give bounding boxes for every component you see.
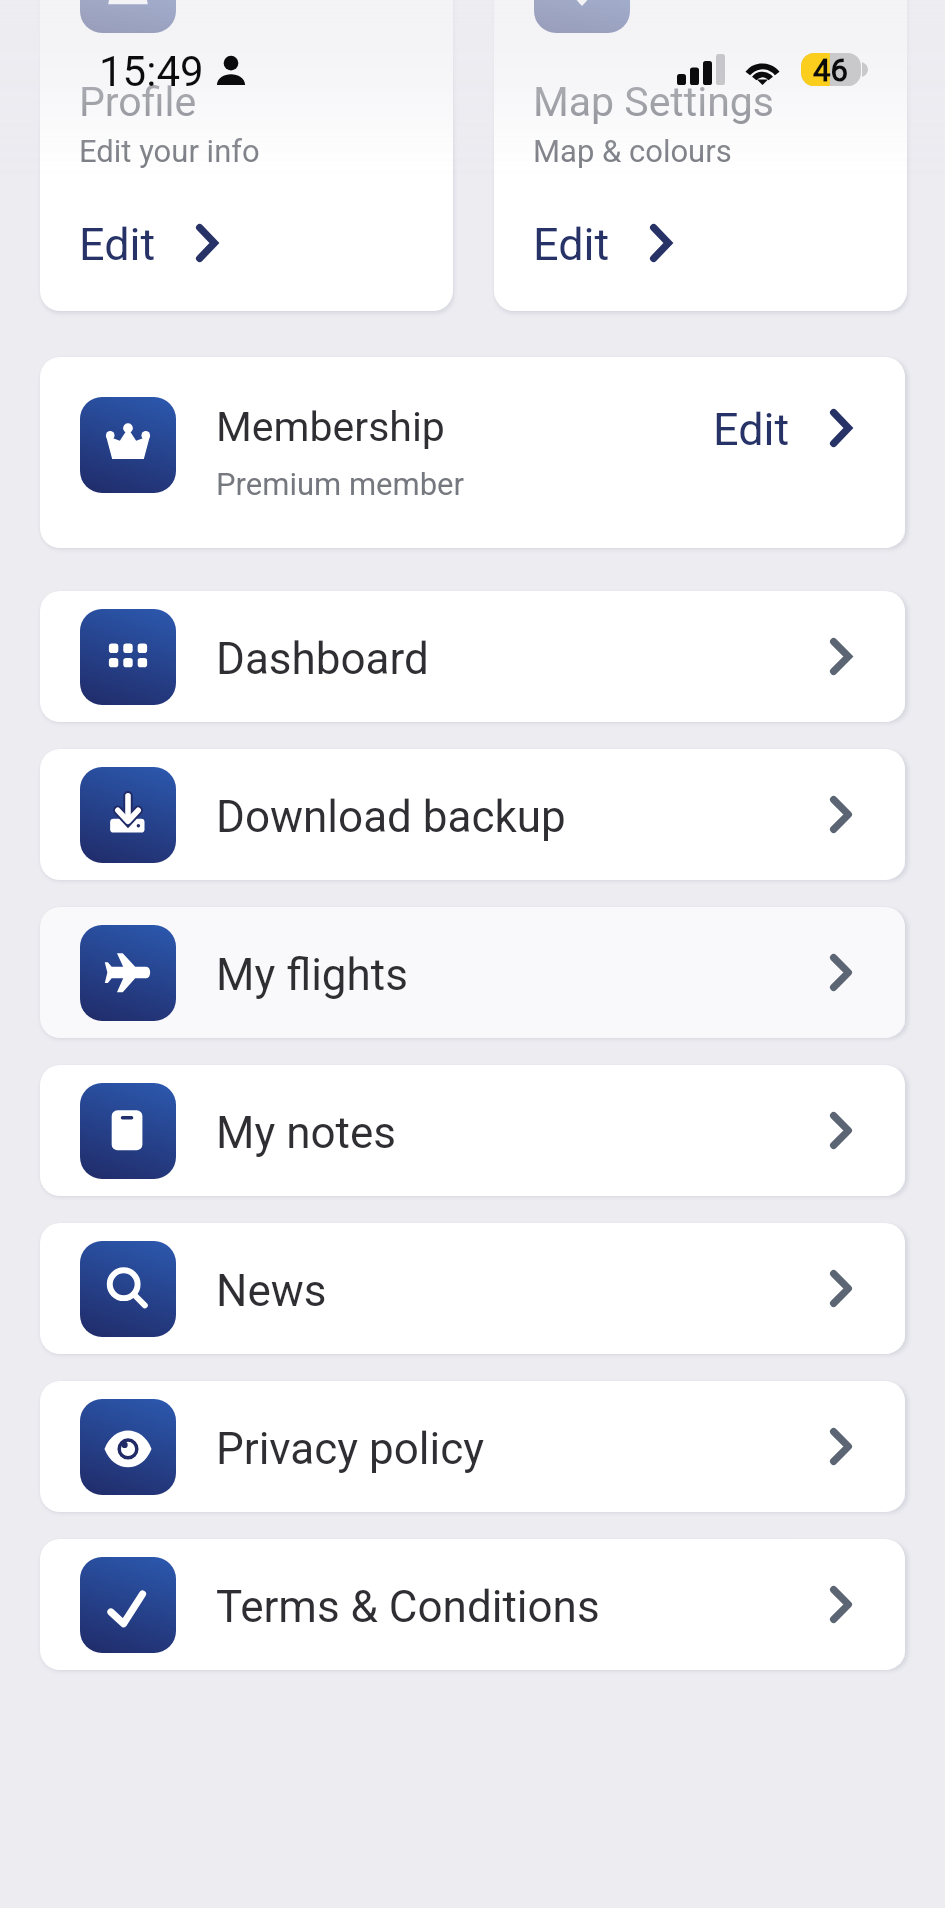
button[interactable]: Download backup (40, 749, 905, 880)
staticText: 15:49 (99, 47, 204, 96)
button[interactable]: Edit (705, 401, 865, 455)
button[interactable]: Terms & Conditions (40, 1539, 905, 1670)
staticText: Edit (79, 218, 156, 271)
button[interactable]: My flights (40, 907, 905, 1038)
staticText: Membership (216, 403, 445, 451)
staticText: Profile (79, 78, 197, 126)
staticText: My flights (216, 949, 408, 1001)
staticText: Edit (533, 218, 610, 271)
staticText: Edit your info (79, 133, 260, 169)
staticText: My notes (216, 1107, 396, 1159)
staticText: Privacy policy (216, 1423, 485, 1475)
staticText: Edit (713, 403, 790, 456)
staticText: 46 (813, 52, 848, 88)
button[interactable]: Membership (40, 357, 905, 548)
button[interactable]: News (40, 1223, 905, 1354)
button[interactable]: Dashboard (40, 591, 905, 722)
staticText: Terms & Conditions (216, 1581, 600, 1633)
staticText: News (216, 1265, 327, 1317)
button[interactable]: Map Settings (494, 0, 907, 311)
staticText: Dashboard (216, 633, 429, 685)
staticText: Premium member (216, 466, 465, 502)
other: Account (216, 56, 246, 85)
staticText: Download backup (216, 791, 566, 843)
button[interactable]: Profile (40, 0, 453, 311)
button[interactable]: Privacy policy (40, 1381, 905, 1512)
button[interactable]: My notes (40, 1065, 905, 1196)
button[interactable]: Edit (525, 216, 685, 270)
staticText: Map & colours (533, 133, 732, 169)
staticText: Map Settings (533, 78, 774, 126)
button[interactable]: Edit (71, 216, 231, 270)
